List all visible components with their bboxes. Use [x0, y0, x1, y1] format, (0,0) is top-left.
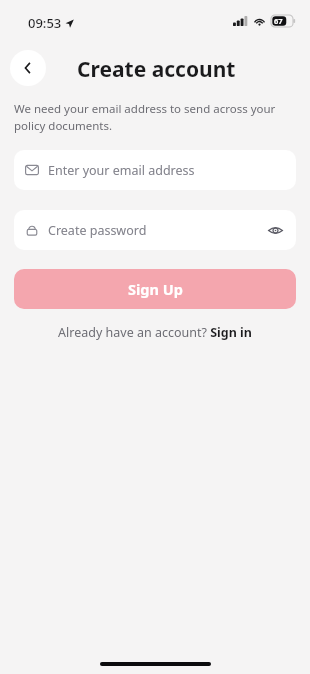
- button[interactable]: Show password: [265, 220, 285, 240]
- staticText: Already have an account? Sign in: [58, 324, 252, 341]
- button[interactable]: Enter your email address: [14, 150, 296, 190]
- button[interactable]: Create password: [14, 210, 296, 250]
- staticText: We need your email address to send acros…: [14, 101, 292, 134]
- staticText: Sign Up: [128, 279, 183, 299]
- button[interactable]: Sign Up: [14, 269, 296, 309]
- staticText: Create account: [77, 55, 236, 84]
- button[interactable]: Back: [10, 50, 46, 86]
- staticText: Enter your email address: [48, 162, 195, 179]
- staticText: 67: [274, 16, 283, 26]
- staticText: 09:53: [28, 14, 62, 32]
- staticText: Create password: [48, 222, 147, 239]
- button[interactable]: Already have an account? Sign in: [0, 324, 310, 341]
